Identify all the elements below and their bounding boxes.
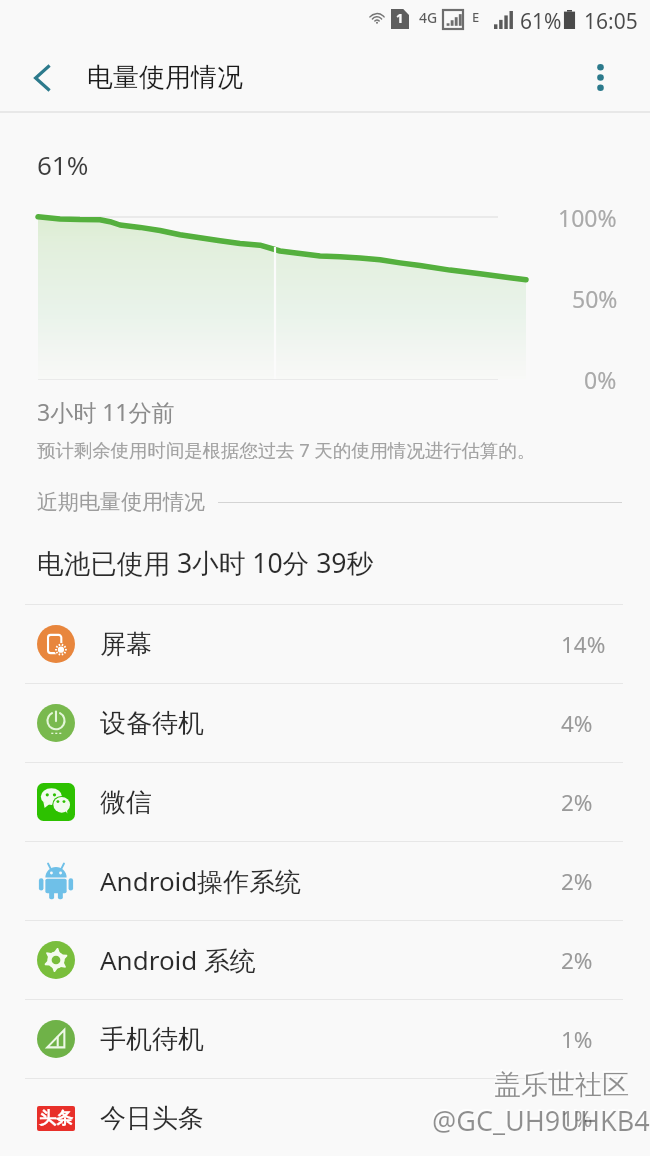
staticText: 0% [584, 364, 617, 395]
staticText: 1 [396, 9, 404, 27]
staticText: 2% [561, 866, 593, 897]
button[interactable]: More options [576, 54, 624, 102]
staticText: 2% [561, 787, 593, 818]
staticText: 头条 [39, 1108, 73, 1129]
staticText: 盖乐世社区 [494, 1068, 629, 1102]
staticText: Android 系统 [100, 942, 257, 978]
staticText: 电量使用情况 [87, 61, 243, 94]
staticText: 14% [561, 629, 606, 660]
staticText: @GC_UH9UHKB4 [432, 1102, 650, 1139]
staticText: 1% [561, 1103, 593, 1134]
staticText: 盖乐世社区 [493, 1066, 628, 1100]
staticText: 微信 [100, 786, 152, 819]
button[interactable]: 屏幕 [0, 605, 650, 683]
button[interactable]: Android操作系统 [0, 842, 650, 920]
button[interactable]: 设备待机 [0, 684, 650, 762]
staticText: 2% [561, 945, 593, 976]
staticText: 设备待机 [100, 707, 204, 740]
staticText: 4G [419, 8, 438, 27]
button[interactable]: Android 系统 [0, 921, 650, 999]
staticText: 3小时 11分前 [37, 396, 175, 427]
staticText: 16:05 [584, 7, 638, 36]
button[interactable]: 手机待机 [0, 1000, 650, 1078]
staticText: @GC_UH9UHKB4 [431, 1100, 649, 1137]
staticText: 屏幕 [100, 628, 152, 661]
staticText: 近期电量使用情况 [37, 489, 205, 515]
staticText: 电池已使用 3小时 10分 39秒 [37, 545, 374, 581]
button[interactable]: 微信 [0, 763, 650, 841]
staticText: 1% [561, 1024, 593, 1055]
staticText: 50% [572, 283, 618, 314]
staticText: 61% [520, 7, 562, 36]
staticText: Android操作系统 [100, 863, 302, 899]
staticText: E [472, 8, 480, 26]
staticText: 4% [561, 708, 593, 739]
staticText: 今日头条 [100, 1102, 204, 1135]
staticText: 手机待机 [100, 1023, 204, 1056]
staticText: 61% [37, 147, 89, 182]
staticText: 预计剩余使用时间是根据您过去 7 天的使用情况进行估算的。 [37, 437, 536, 462]
staticText: 100% [558, 202, 617, 233]
button[interactable]: Back [16, 51, 70, 105]
button[interactable]: 头条 [0, 1079, 650, 1156]
